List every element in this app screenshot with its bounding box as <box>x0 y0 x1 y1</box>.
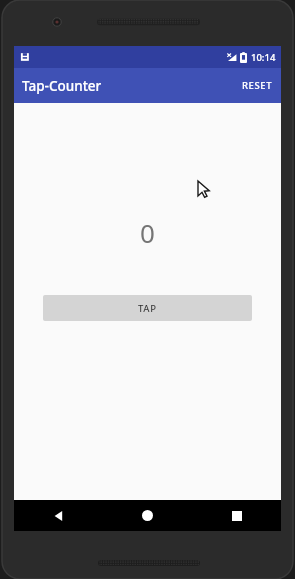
staticText: RESET <box>242 79 273 92</box>
button[interactable]: Recent apps <box>192 500 281 531</box>
staticText: 10:14 <box>251 51 276 64</box>
button[interactable]: Home <box>103 500 192 531</box>
staticText: 0 <box>140 215 155 250</box>
button[interactable]: RESET <box>234 71 281 100</box>
staticText: Tap-Counter <box>22 77 102 95</box>
button[interactable]: TAP <box>43 295 252 321</box>
button[interactable]: Back <box>14 500 103 531</box>
staticText: TAP <box>138 302 157 315</box>
